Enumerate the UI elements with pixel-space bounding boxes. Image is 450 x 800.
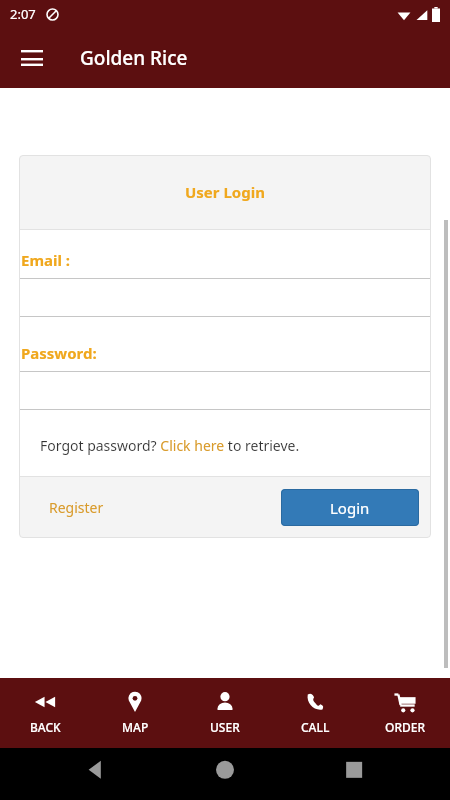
staticText: CALL bbox=[301, 719, 330, 735]
staticText: ORDER bbox=[385, 719, 426, 735]
button[interactable]: Register bbox=[49, 498, 104, 517]
staticText: User Login bbox=[185, 182, 265, 202]
button[interactable]: USER bbox=[180, 678, 270, 748]
staticText: BACK bbox=[30, 719, 61, 735]
button[interactable]: BACK bbox=[0, 678, 90, 748]
button[interactable]: MAP bbox=[90, 678, 180, 748]
staticText: Email : bbox=[21, 250, 71, 270]
staticText: Golden Rice bbox=[80, 45, 188, 71]
button[interactable]: Open navigation menu bbox=[12, 38, 52, 78]
button[interactable] bbox=[19, 278, 431, 317]
button[interactable]: CALL bbox=[270, 678, 360, 748]
staticText: Login bbox=[330, 498, 370, 518]
button[interactable]: ORDER bbox=[360, 678, 450, 748]
staticText: 2:07 bbox=[10, 5, 36, 23]
button[interactable] bbox=[19, 371, 431, 410]
staticText: Password: bbox=[21, 343, 97, 363]
staticText: MAP bbox=[122, 719, 149, 735]
staticText: USER bbox=[210, 719, 240, 735]
staticText: Forgot password? Click here to retrieve. bbox=[40, 436, 300, 455]
button[interactable]: Login bbox=[281, 489, 419, 526]
staticText: Register bbox=[49, 498, 104, 517]
